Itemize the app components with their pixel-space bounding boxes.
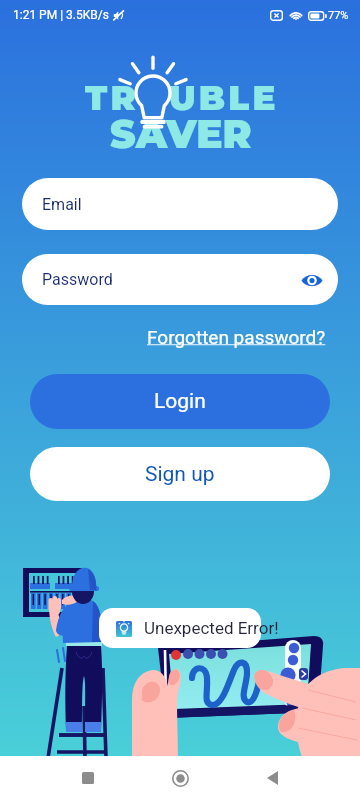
button[interactable]: Password <box>22 254 338 305</box>
staticText: SAVER <box>110 110 252 158</box>
button[interactable]: Forgotten password? <box>147 326 326 348</box>
button[interactable]: Login <box>30 374 330 429</box>
button[interactable]: Recent apps <box>66 756 110 800</box>
staticText: Email <box>42 195 82 214</box>
staticText: Password <box>42 270 113 289</box>
staticText: Unexpected Error! <box>144 618 279 638</box>
button[interactable]: Show password <box>299 267 325 293</box>
staticText: 77% <box>328 9 349 22</box>
button[interactable]: Sign up <box>30 447 330 501</box>
staticText: Forgotten password? <box>147 326 326 348</box>
staticText: 1:21 PM | 3.5KB/s <box>13 8 109 22</box>
button[interactable]: Email <box>22 178 338 230</box>
staticText: Sign up <box>145 462 215 487</box>
staticText: TR <box>85 77 139 118</box>
button[interactable]: Back <box>250 756 294 800</box>
staticText: UBLE <box>169 77 279 118</box>
staticText: Login <box>154 389 206 414</box>
button[interactable]: Home <box>158 756 202 800</box>
